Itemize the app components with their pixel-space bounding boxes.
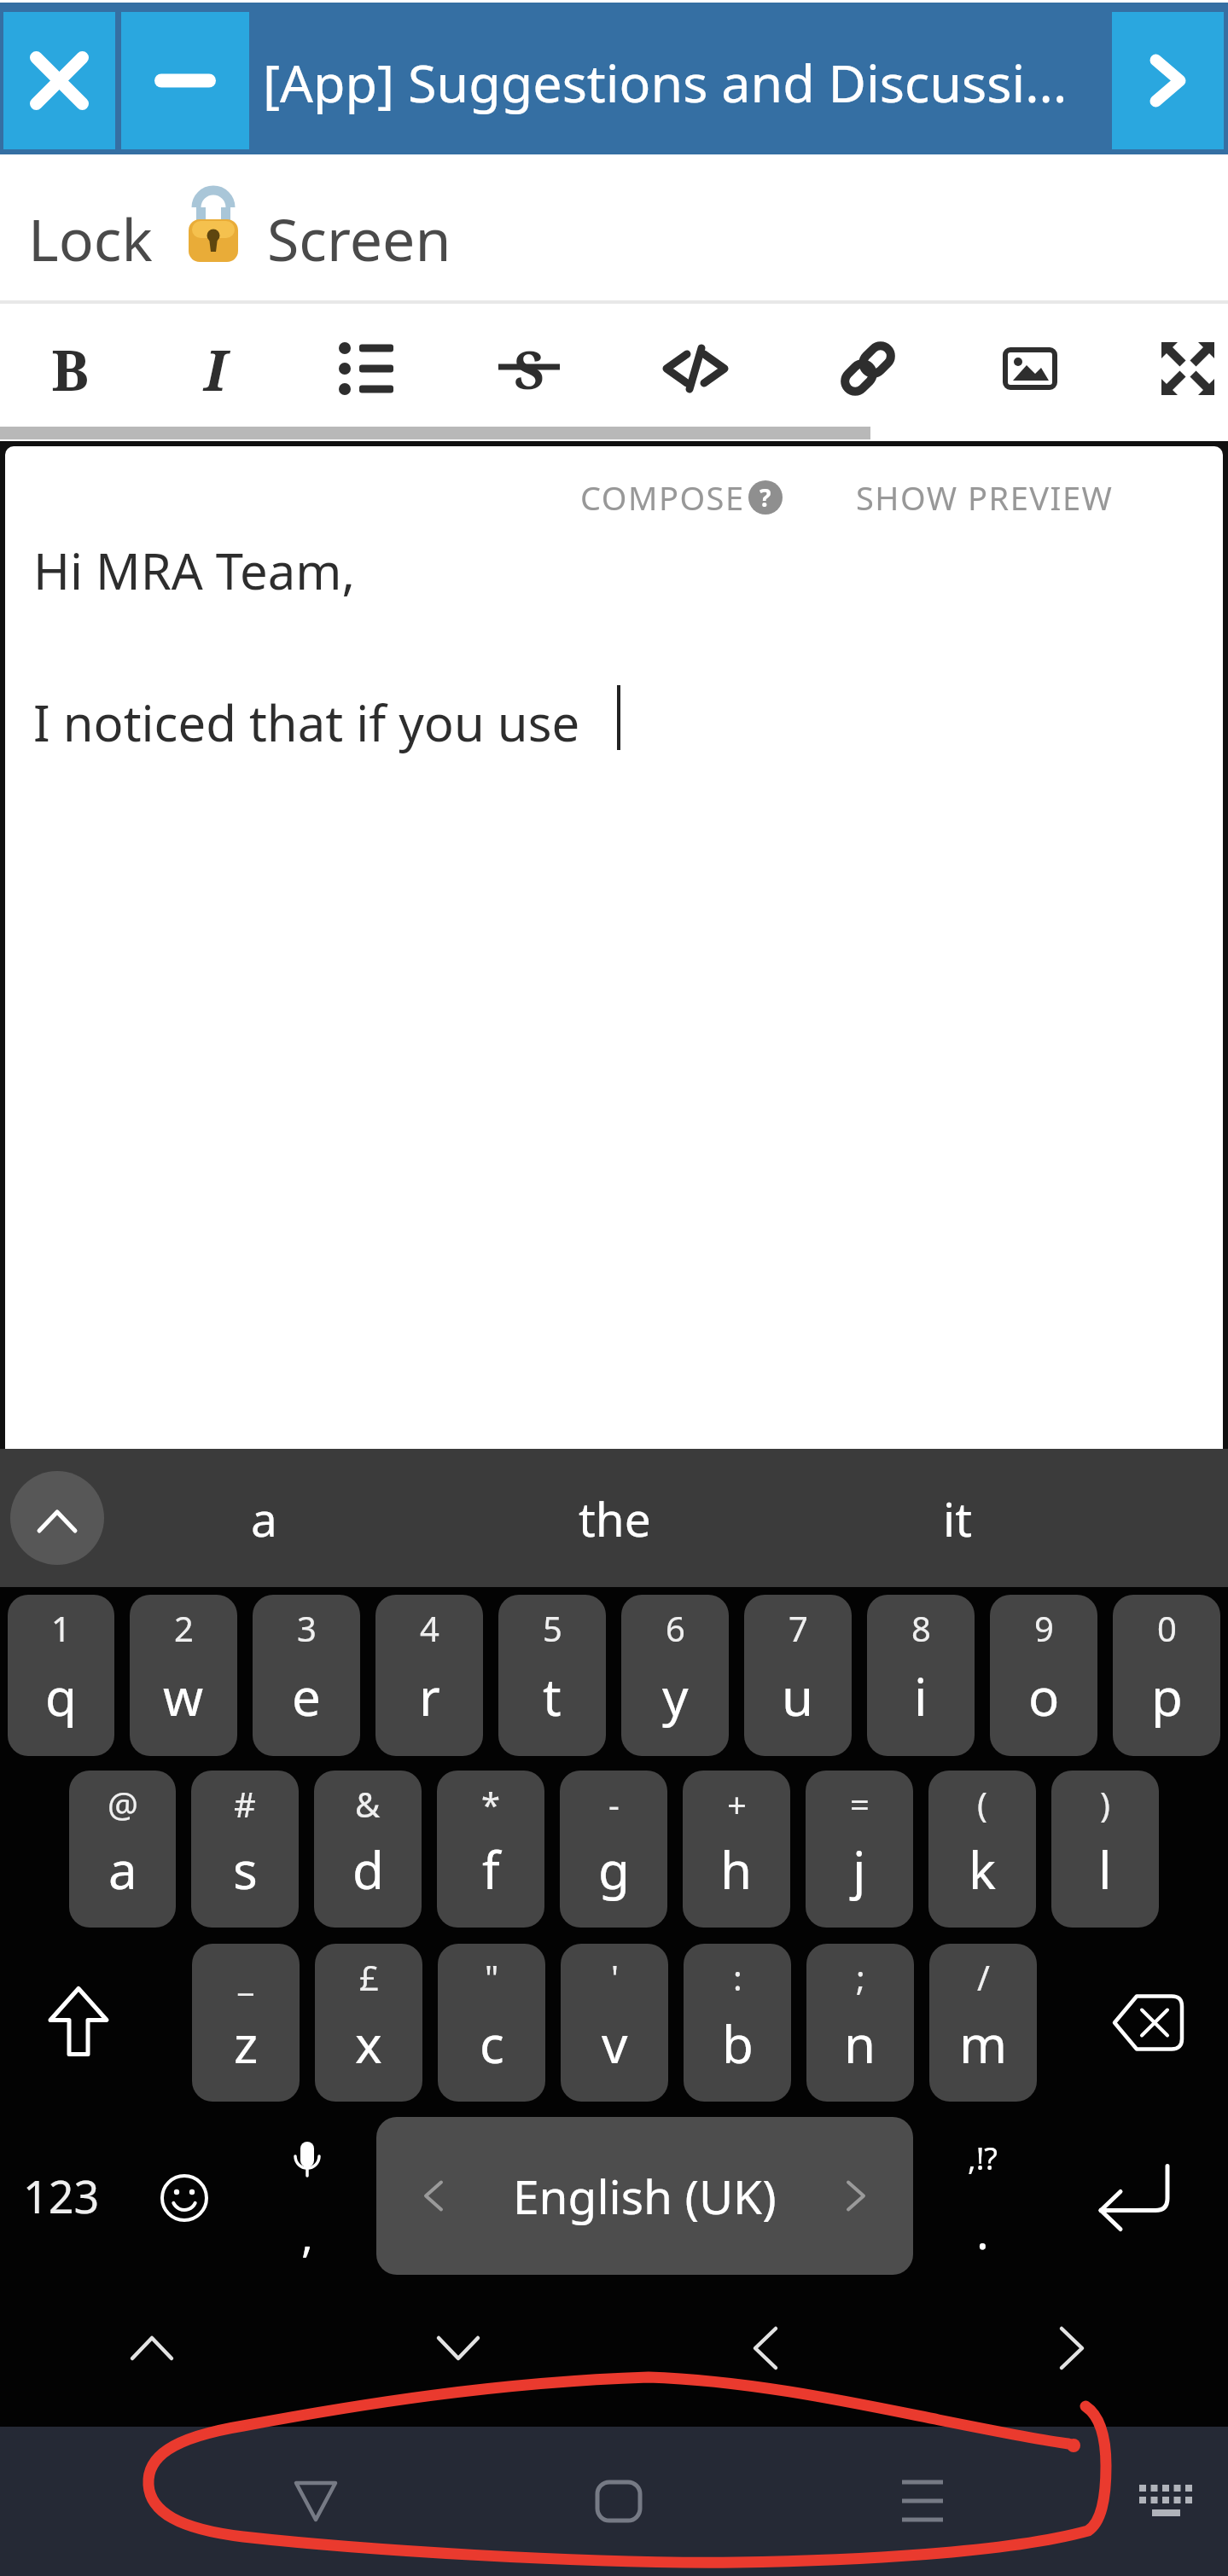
button[interactable]: 0 (1113, 1595, 1220, 1756)
button[interactable]: * (437, 1771, 544, 1928)
button[interactable] (854, 2433, 991, 2569)
button[interactable] (0, 2275, 306, 2427)
button[interactable] (550, 2433, 687, 2569)
button[interactable]: 8 (867, 1595, 975, 1756)
staticText: f (482, 1835, 500, 1904)
staticText: 2 (174, 1605, 194, 1651)
staticText: c (480, 2009, 504, 2079)
button[interactable] (921, 2275, 1228, 2427)
staticText: 4 (420, 1605, 439, 1651)
button[interactable] (321, 317, 415, 420)
button[interactable]: , (246, 2117, 369, 2275)
button[interactable]: B (23, 317, 117, 420)
button[interactable] (983, 317, 1077, 420)
button[interactable]: 1 (8, 1595, 114, 1756)
button[interactable] (247, 2433, 384, 2569)
button[interactable]: ,!? (921, 2117, 1044, 2275)
staticText: ; (856, 1954, 865, 2000)
staticText: a (251, 1486, 277, 1550)
staticText: + (727, 1781, 747, 1827)
button[interactable]: Lock (0, 154, 1228, 300)
button[interactable] (306, 2275, 614, 2427)
button[interactable]: 4 (375, 1595, 483, 1756)
button[interactable]: _ (192, 1944, 300, 2102)
staticText: x (355, 2009, 382, 2079)
staticText: - (608, 1781, 620, 1827)
button[interactable]: # (191, 1771, 299, 1928)
staticText: COMPOSE (580, 475, 745, 520)
staticText: o (1028, 1661, 1060, 1731)
button[interactable]: / (929, 1944, 1037, 2102)
button[interactable]: ( (928, 1771, 1036, 1928)
button[interactable]: it (847, 1467, 1068, 1569)
staticText: 7 (789, 1605, 808, 1651)
button[interactable]: 3 (253, 1595, 360, 1756)
staticText: it (943, 1486, 973, 1550)
button[interactable]: 2 (130, 1595, 237, 1756)
staticText: / (977, 1954, 990, 2000)
button[interactable]: 123 (0, 2117, 123, 2275)
button[interactable]: @ (69, 1771, 176, 1928)
staticText: h (720, 1835, 753, 1904)
staticText: q (45, 1661, 77, 1731)
button[interactable] (10, 1471, 104, 1565)
staticText: 123 (23, 2166, 100, 2226)
button[interactable]: 7 (744, 1595, 852, 1756)
button[interactable]: I (168, 317, 262, 420)
button[interactable]: S (482, 317, 576, 420)
button[interactable]: a (153, 1467, 375, 1569)
staticText: 5 (543, 1605, 562, 1651)
button[interactable] (121, 12, 249, 149)
staticText: z (234, 2009, 259, 2079)
staticText: Lock (28, 199, 153, 278)
button[interactable]: £ (315, 1944, 422, 2102)
button[interactable]: the (486, 1467, 742, 1569)
button[interactable]: : (684, 1944, 791, 2102)
button[interactable] (1112, 12, 1224, 149)
button[interactable] (1141, 317, 1228, 420)
button[interactable] (3, 12, 115, 149)
staticText: = (850, 1781, 870, 1827)
staticText: I (204, 330, 227, 407)
staticText: e (292, 1661, 321, 1731)
button[interactable]: ) (1051, 1771, 1159, 1928)
staticText: g (598, 1835, 630, 1904)
staticText: English (UK) (513, 2164, 777, 2228)
button[interactable]: 5 (498, 1595, 606, 1756)
button[interactable]: ? (748, 480, 783, 515)
button[interactable]: ; (806, 1944, 914, 2102)
staticText: k (969, 1835, 997, 1904)
button[interactable]: SHOW PREVIEW (856, 474, 1112, 520)
button[interactable]: & (314, 1771, 422, 1928)
staticText: & (355, 1781, 381, 1827)
button[interactable]: - (560, 1771, 667, 1928)
staticText: Screen (267, 199, 451, 278)
button[interactable]: " (438, 1944, 545, 2102)
staticText: , (301, 2204, 313, 2265)
staticText: ( (977, 1781, 987, 1827)
staticText: ) (1100, 1781, 1110, 1827)
button[interactable]: English (UK) (376, 2117, 913, 2275)
button[interactable]: 9 (990, 1595, 1097, 1756)
button[interactable] (0, 1944, 184, 2102)
button[interactable] (1045, 1944, 1228, 2102)
button[interactable] (640, 317, 751, 420)
button[interactable]: ' (561, 1944, 668, 2102)
staticText: : (733, 1954, 742, 2000)
button[interactable]: = (806, 1771, 913, 1928)
staticText: i (914, 1661, 928, 1731)
button[interactable] (1106, 2433, 1225, 2569)
staticText: n (844, 2009, 876, 2079)
button[interactable]: 6 (621, 1595, 729, 1756)
button[interactable]: COMPOSE (551, 474, 773, 520)
staticText: d (352, 1835, 384, 1904)
staticText: s (233, 1835, 258, 1904)
staticText: " (485, 1954, 499, 2000)
button[interactable] (123, 2117, 246, 2275)
button[interactable] (1044, 2117, 1228, 2275)
button[interactable] (614, 2275, 921, 2427)
button[interactable] (821, 317, 915, 420)
staticText: 0 (1157, 1605, 1177, 1651)
staticText: v (602, 2009, 628, 2079)
button[interactable]: + (683, 1771, 790, 1928)
